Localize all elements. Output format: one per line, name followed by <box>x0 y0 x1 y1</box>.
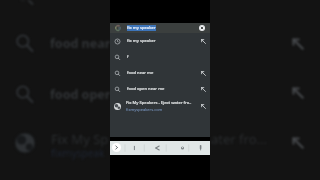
staticText: food oper <box>50 86 111 103</box>
button[interactable]: Clear search <box>199 25 205 31</box>
staticText: fixmyspeak <box>51 146 105 160</box>
staticText: f <box>127 54 129 60</box>
button[interactable]: food near me <box>110 65 210 81</box>
button[interactable]: Insert suggestion <box>201 87 206 92</box>
staticText: ater fro... <box>211 130 267 148</box>
staticText: Fix My Speakers - Eject water fro.. <box>126 100 192 106</box>
staticText: fix my speaker <box>127 38 156 44</box>
button[interactable]: fix my speaker <box>110 33 210 49</box>
staticText: food open near me <box>127 86 165 92</box>
staticText: food near me <box>127 70 154 76</box>
button[interactable]: Insert suggestion <box>201 71 206 76</box>
button[interactable]: Expand toolbar <box>112 143 121 152</box>
staticText: fixmyspeakers.com <box>126 107 163 112</box>
staticText: fix my speaker <box>127 25 156 31</box>
button[interactable]: Insert suggestion <box>201 39 206 44</box>
button[interactable]: fix my speaker <box>110 23 210 33</box>
button[interactable]: f <box>110 49 210 65</box>
button[interactable]: food open near me <box>110 81 210 97</box>
button[interactable]: Insert suggestion <box>201 104 206 109</box>
button[interactable]: Fix My Speakers - Eject water fro.. <box>110 97 210 115</box>
staticText: Fix My Sp <box>51 130 109 148</box>
staticText: food near <box>50 35 111 52</box>
